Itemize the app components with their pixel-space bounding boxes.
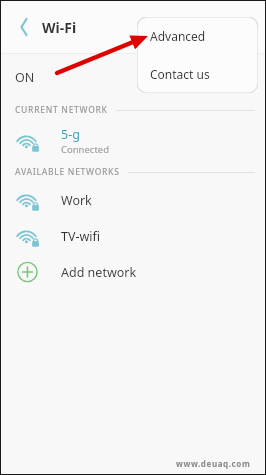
staticText: Add network xyxy=(61,264,137,281)
button[interactable]: Contact us xyxy=(137,55,258,93)
staticText: ON xyxy=(15,69,35,86)
staticText: 5-g xyxy=(61,126,80,143)
staticText: Connected xyxy=(61,143,110,156)
button[interactable]: Back xyxy=(11,14,37,40)
button[interactable]: TV-wifi xyxy=(1,218,265,254)
button[interactable]: 5-g xyxy=(1,120,265,162)
staticText: Advanced xyxy=(150,28,206,44)
button[interactable]: Work xyxy=(1,182,265,218)
staticText: TV-wifi xyxy=(61,228,101,245)
button[interactable]: Advanced xyxy=(137,17,258,55)
staticText: AVAILABLE NETWORKS xyxy=(15,166,120,178)
staticText: Wi-Fi xyxy=(42,18,77,37)
staticText: www.deuaq.com xyxy=(176,458,251,469)
button[interactable]: ON xyxy=(1,54,265,100)
button[interactable]: Add network xyxy=(1,254,265,290)
staticText: CURRENT NETWORK xyxy=(15,104,108,116)
staticText: Contact us xyxy=(150,66,210,82)
staticText: Work xyxy=(61,192,92,209)
